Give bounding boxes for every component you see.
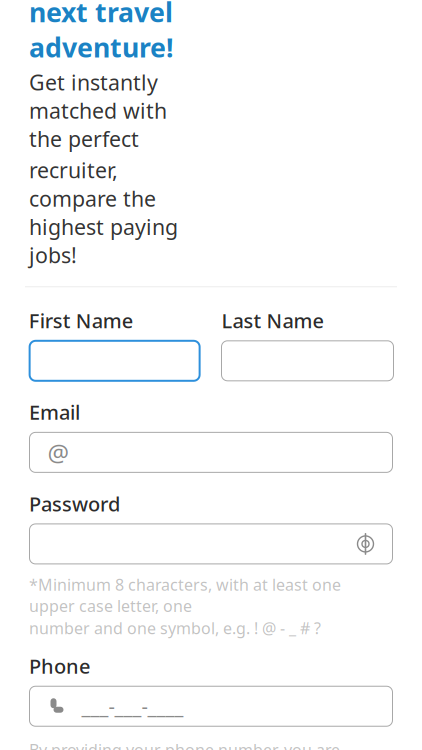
button[interactable]: First Name — [30, 341, 200, 381]
button[interactable]: Phone — [29, 686, 392, 726]
staticText: ___-___-____ — [81, 693, 183, 720]
staticText: By providing your phone number, you are … — [29, 739, 340, 750]
staticText: @ — [47, 436, 69, 468]
staticText: Password — [29, 490, 120, 517]
staticText: Get instantly matched with the perfect — [29, 68, 167, 153]
button[interactable]: Email — [29, 432, 392, 472]
staticText: number and one symbol, e.g. ! @ - _ # ? — [29, 617, 321, 639]
staticText: Phone — [29, 653, 90, 679]
staticText: First Name — [29, 307, 133, 334]
button[interactable]: Password — [29, 524, 392, 564]
staticText: Last Name — [221, 307, 323, 334]
staticText: recruiter, compare the highest paying jo… — [29, 156, 178, 269]
staticText: Start your next travel adventure! — [29, 0, 174, 65]
staticText: *Minimum 8 characters, with at least one… — [29, 574, 341, 616]
button[interactable]: Last Name — [221, 341, 393, 381]
staticText: Email — [29, 399, 80, 425]
